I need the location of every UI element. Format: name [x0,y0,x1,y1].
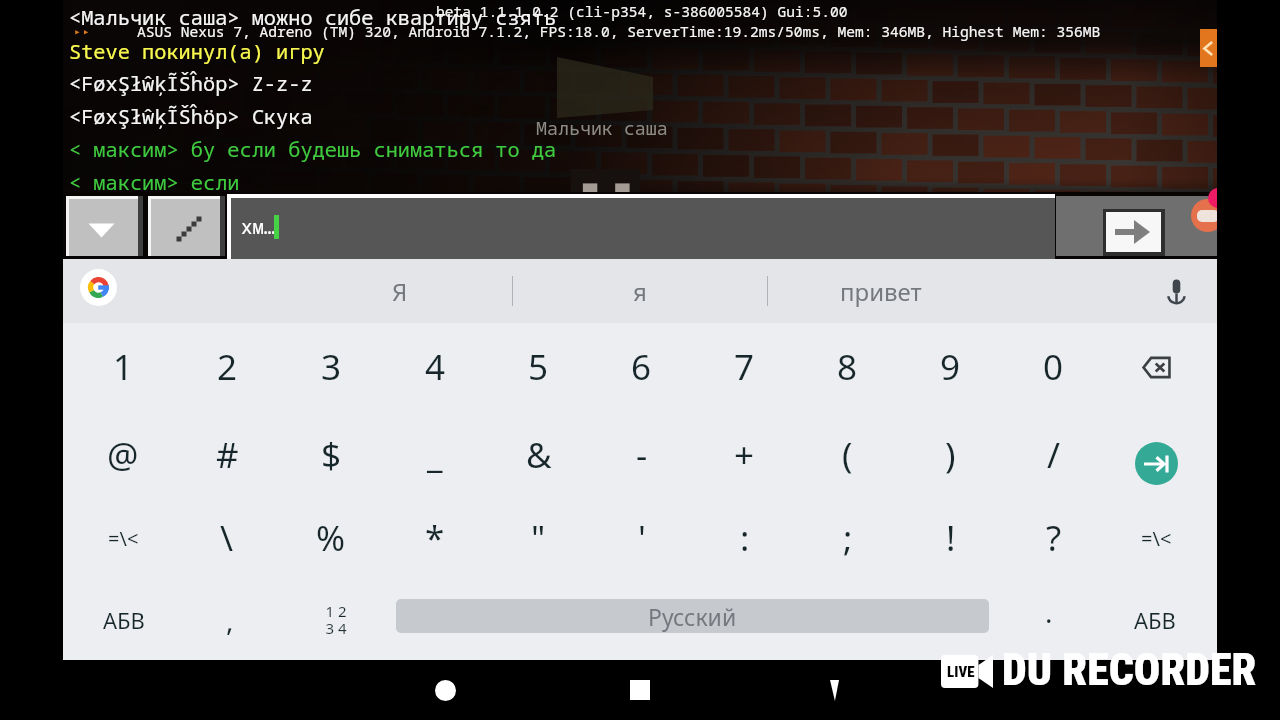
staticText: 2 [217,343,238,391]
button[interactable]: xм… [231,198,1055,259]
staticText: < максим> если [69,168,240,196]
staticText: я [633,275,647,308]
staticText: $ [321,431,342,479]
button[interactable]: ! [899,495,1002,581]
button[interactable]: АБВ [71,579,177,660]
staticText: + [734,431,755,479]
staticText: - [636,431,648,479]
staticText: Русский [648,601,737,632]
button[interactable]: =\< [1105,495,1208,581]
staticText: ' [638,514,646,562]
staticText: Steve покинул(а) игру [69,37,325,65]
staticText: <Мальчик саша> можно сибе квартиру сзять [69,3,557,31]
staticText: ▸▸ [73,21,91,41]
staticText: 6 [631,343,652,391]
button[interactable]: 9 [899,323,1002,411]
staticText: <FøxŞłŵķĨŠĥöp> Z-z-z [69,69,313,97]
staticText: ASUS Nexus 7, Adreno (TM) 320, Android 7… [137,21,1101,41]
button[interactable]: Collapse chat [69,199,138,256]
staticText: " [531,514,546,562]
button[interactable]: =\< [71,495,175,581]
button[interactable]: * [383,495,487,581]
staticText: xм… [241,214,276,240]
staticText: Мальчик саша [536,115,668,140]
staticText: ( [842,431,853,479]
button[interactable]: АБВ [1102,579,1208,660]
button[interactable]: : [693,495,796,581]
button[interactable]: 8 [796,323,899,411]
button[interactable]: 6 [590,323,693,411]
button[interactable]: ' [590,495,693,581]
button[interactable]: ( [796,411,899,498]
staticText: 8 [837,343,858,391]
staticText: 1 2 3 4 [325,601,347,639]
button[interactable]: Voice input [1144,259,1208,323]
staticText: <FøxŞłŵķĨŠĥöp> Скука [69,102,313,130]
button[interactable]: / [1002,411,1105,498]
button[interactable]: Русский [396,599,989,633]
button[interactable]: # [175,411,279,498]
button[interactable]: 2 [175,323,279,411]
button[interactable]: Я [287,259,512,323]
staticText: ; [843,514,853,562]
staticText: _ [427,431,443,479]
staticText: АБВ [103,605,145,635]
staticText: ! [946,514,956,562]
staticText: @ [107,431,139,479]
staticText: beta 1.1.1.0.2 (cli-p354, s-386005584) G… [436,1,848,21]
staticText: 9 [940,343,961,391]
button[interactable]: Enter [1105,411,1208,498]
staticText: \ [220,514,234,562]
button[interactable]: 0 [1002,323,1105,411]
button[interactable]: @ [71,411,175,498]
button[interactable]: " [487,495,590,581]
button[interactable]: ) [899,411,1002,498]
button[interactable]: ; [796,495,899,581]
staticText: =\< [1141,525,1172,552]
staticText: 4 [425,343,446,391]
button[interactable]: - [590,411,693,498]
button[interactable]: 5 [487,323,590,411]
staticText: 3 [321,343,342,391]
staticText: =\< [108,525,139,552]
staticText: Я [392,275,408,308]
button[interactable]: 7 [693,323,796,411]
button[interactable]: 1 [71,323,175,411]
staticText: DU RECORDER [1002,644,1257,696]
staticText: # [216,431,239,479]
button[interactable]: Numbers [283,579,389,660]
staticText: 7 [734,343,755,391]
staticText: , [226,601,234,639]
staticText: : [740,514,750,562]
button[interactable]: , [177,579,283,660]
button[interactable]: привет [768,259,994,323]
button[interactable]: ? [1002,495,1105,581]
button[interactable]: 4 [383,323,487,411]
staticText: * [425,514,445,562]
staticText: ) [945,431,956,479]
button[interactable]: Back [812,668,856,712]
button[interactable]: 3 [279,323,383,411]
button[interactable]: Slash command [151,199,220,256]
button[interactable]: % [279,495,383,581]
button[interactable]: Expand panel [1200,29,1217,67]
staticText: 1 [113,343,134,391]
button[interactable]: Recents [618,668,662,712]
button[interactable]: я [513,259,767,323]
staticText: 5 [528,343,549,391]
button[interactable]: $ [279,411,383,498]
staticText: АБВ [1134,605,1176,635]
button[interactable]: Backspace [1105,323,1208,411]
button[interactable]: \ [175,495,279,581]
button[interactable]: + [693,411,796,498]
staticText: & [526,431,552,479]
button[interactable]: & [487,411,590,498]
staticText: 0 [1043,343,1064,391]
button[interactable]: _ [383,411,487,498]
button[interactable]: Home [423,668,467,712]
staticText: ? [1046,514,1062,562]
button[interactable]: Send [1106,212,1161,252]
button[interactable]: Google [80,269,117,306]
button[interactable]: · [996,579,1102,660]
staticText: LIVE [947,663,975,681]
